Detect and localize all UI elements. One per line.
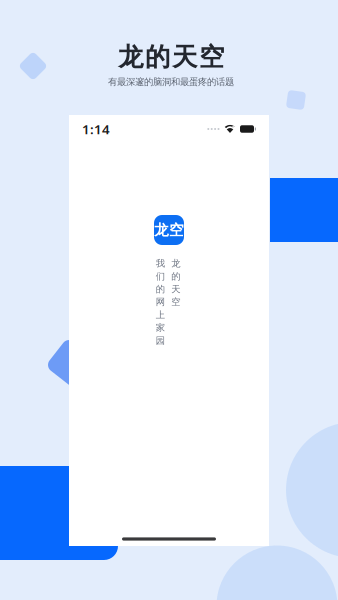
staticText: 龙空: [154, 221, 184, 239]
staticText: 空: [171, 296, 180, 308]
staticText: 家: [156, 322, 165, 333]
staticText: 龙: [171, 258, 180, 269]
staticText: 我: [156, 258, 165, 269]
staticText: 有最深邃的脑洞和最蛋疼的话题: [108, 76, 234, 88]
staticText: 空: [199, 41, 224, 72]
staticText: 们: [156, 270, 165, 282]
staticText: 的: [156, 283, 165, 295]
staticText: 园: [156, 335, 165, 346]
staticText: 1:14: [82, 120, 110, 138]
staticText: 的: [145, 41, 170, 72]
staticText: 天: [171, 283, 180, 295]
staticText: 网: [156, 296, 165, 308]
staticText: 的: [171, 270, 180, 282]
staticText: 天: [172, 41, 197, 72]
staticText: 上: [156, 309, 165, 321]
staticText: 龙: [118, 41, 143, 72]
